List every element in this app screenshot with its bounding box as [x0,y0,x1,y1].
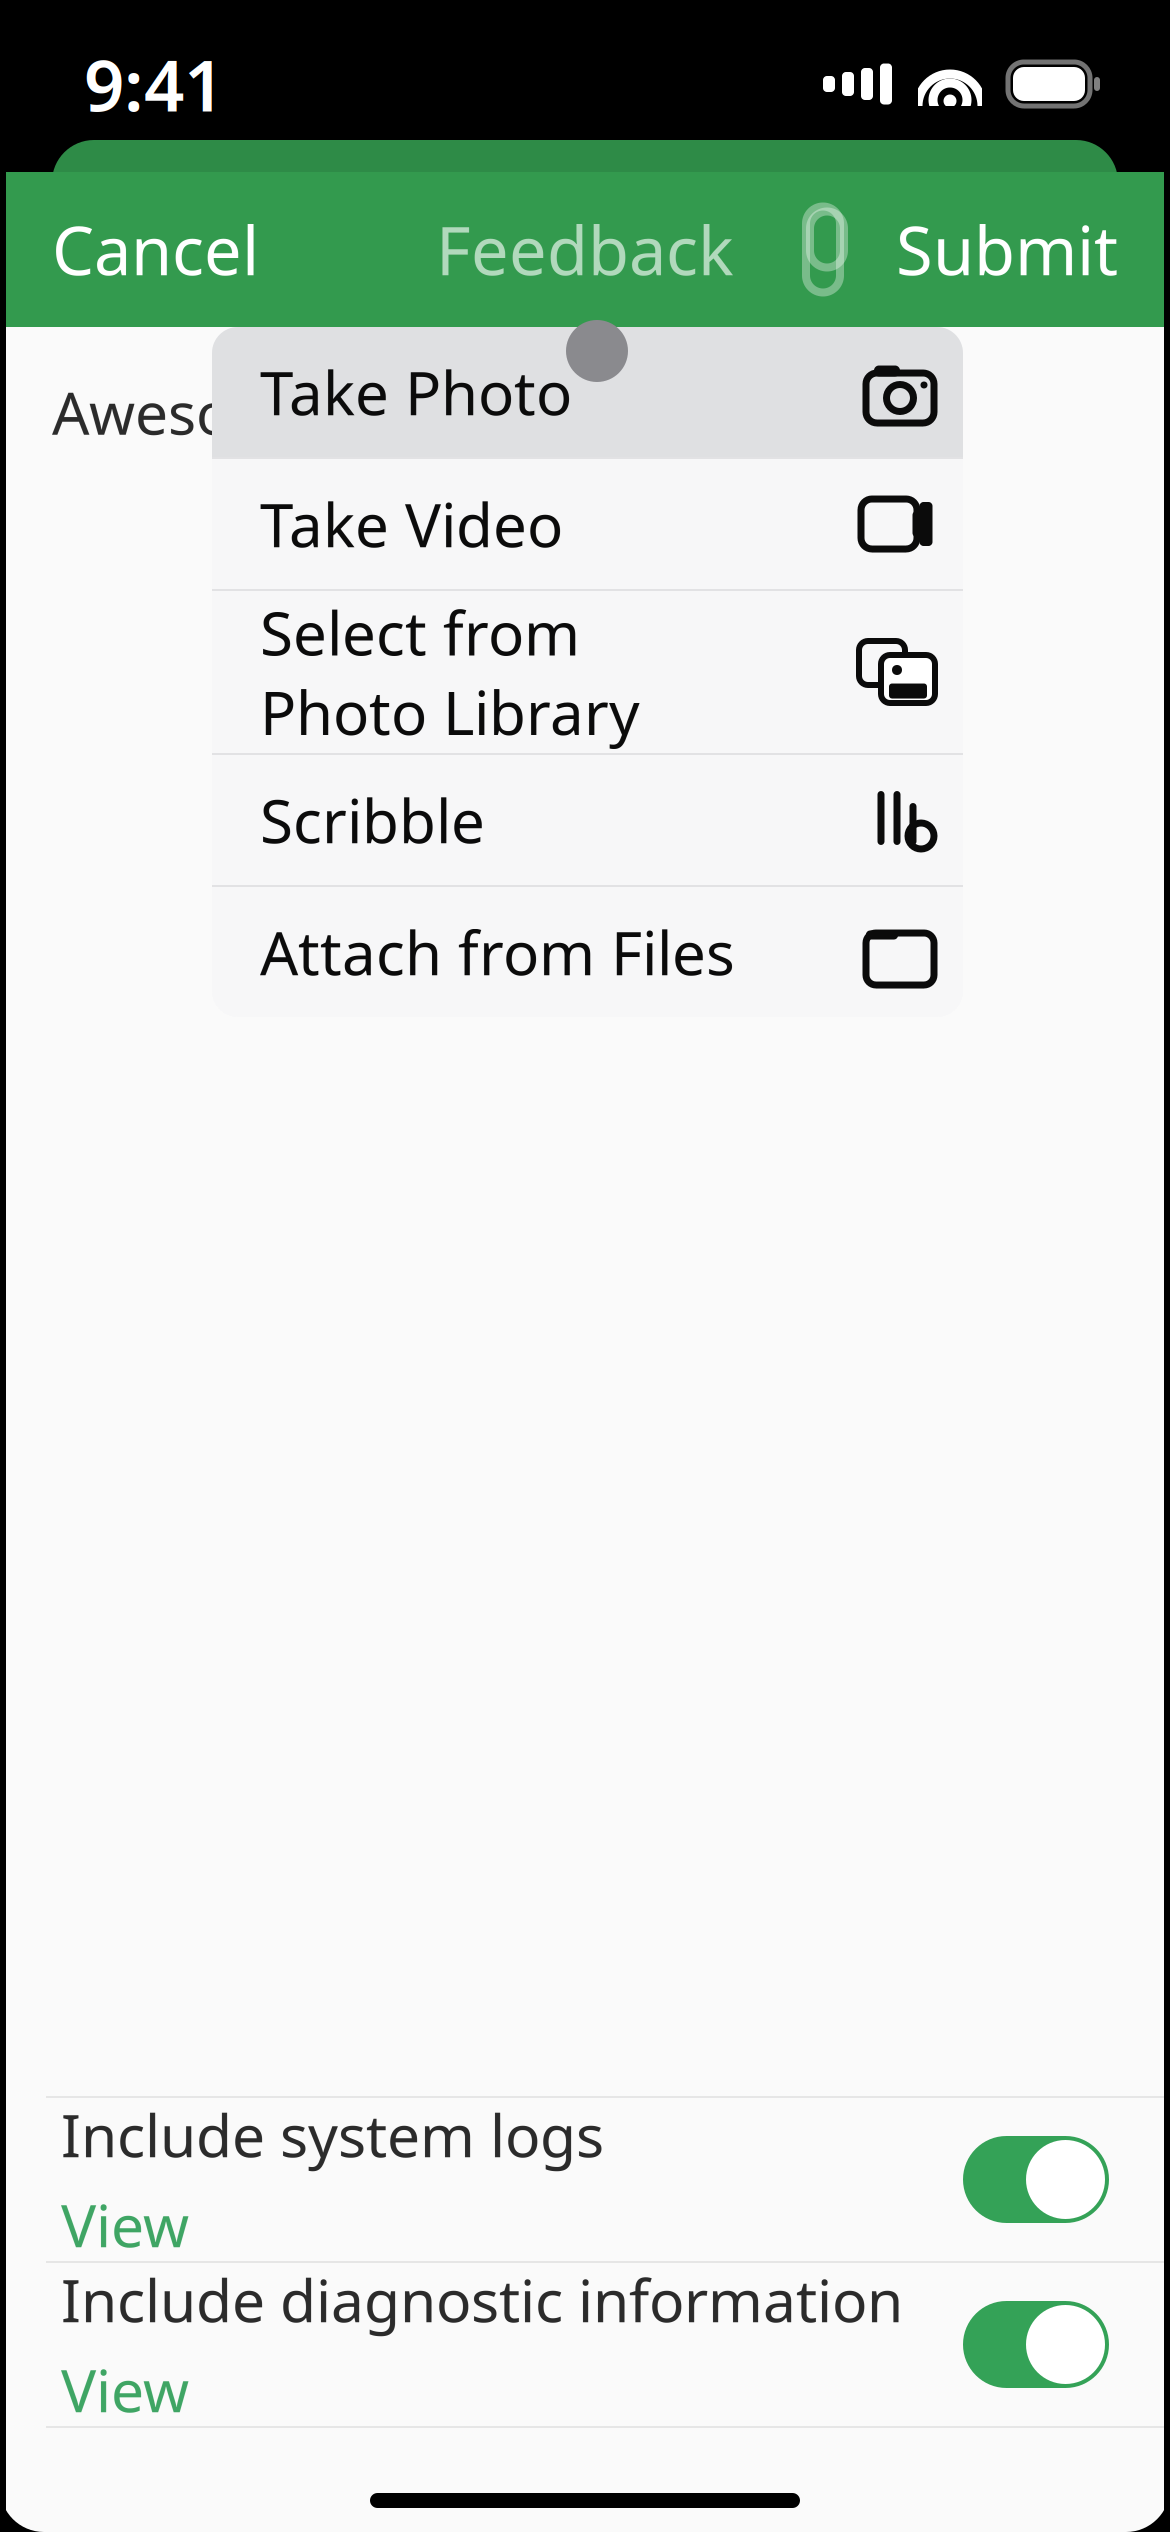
staticText: Scribble [260,780,485,860]
staticText: Include diagnostic information [61,2261,903,2338]
staticText: View [61,2185,189,2263]
button[interactable]: Scribble [212,755,963,885]
staticText: Take Photo [260,352,572,432]
button[interactable]: Submit [860,205,1118,294]
staticText: Feedback [436,205,734,294]
staticText: Select from Photo Library [260,592,640,752]
button[interactable]: Select from Photo Library [212,591,963,753]
staticText: Attach from Files [260,912,735,992]
staticText: Submit [896,205,1118,294]
button[interactable]: Attach [786,212,860,286]
staticText: View [61,2350,189,2428]
button[interactable]: Take Video [212,459,963,589]
button[interactable]: Attach from Files [212,887,963,1017]
button[interactable]: View [61,2185,189,2263]
staticText: Take Video [260,484,563,564]
button[interactable]: Include diagnostic information [963,2301,1109,2388]
button[interactable]: View [61,2350,189,2428]
staticText: Cancel [52,205,259,294]
button[interactable]: Include system logs [963,2136,1109,2223]
staticText: Include system logs [61,2096,604,2173]
staticText: 9:41 [84,37,224,131]
button[interactable]: Take Photo [212,327,963,457]
button[interactable]: Cancel [52,205,259,294]
staticText: Awesome [52,373,319,451]
